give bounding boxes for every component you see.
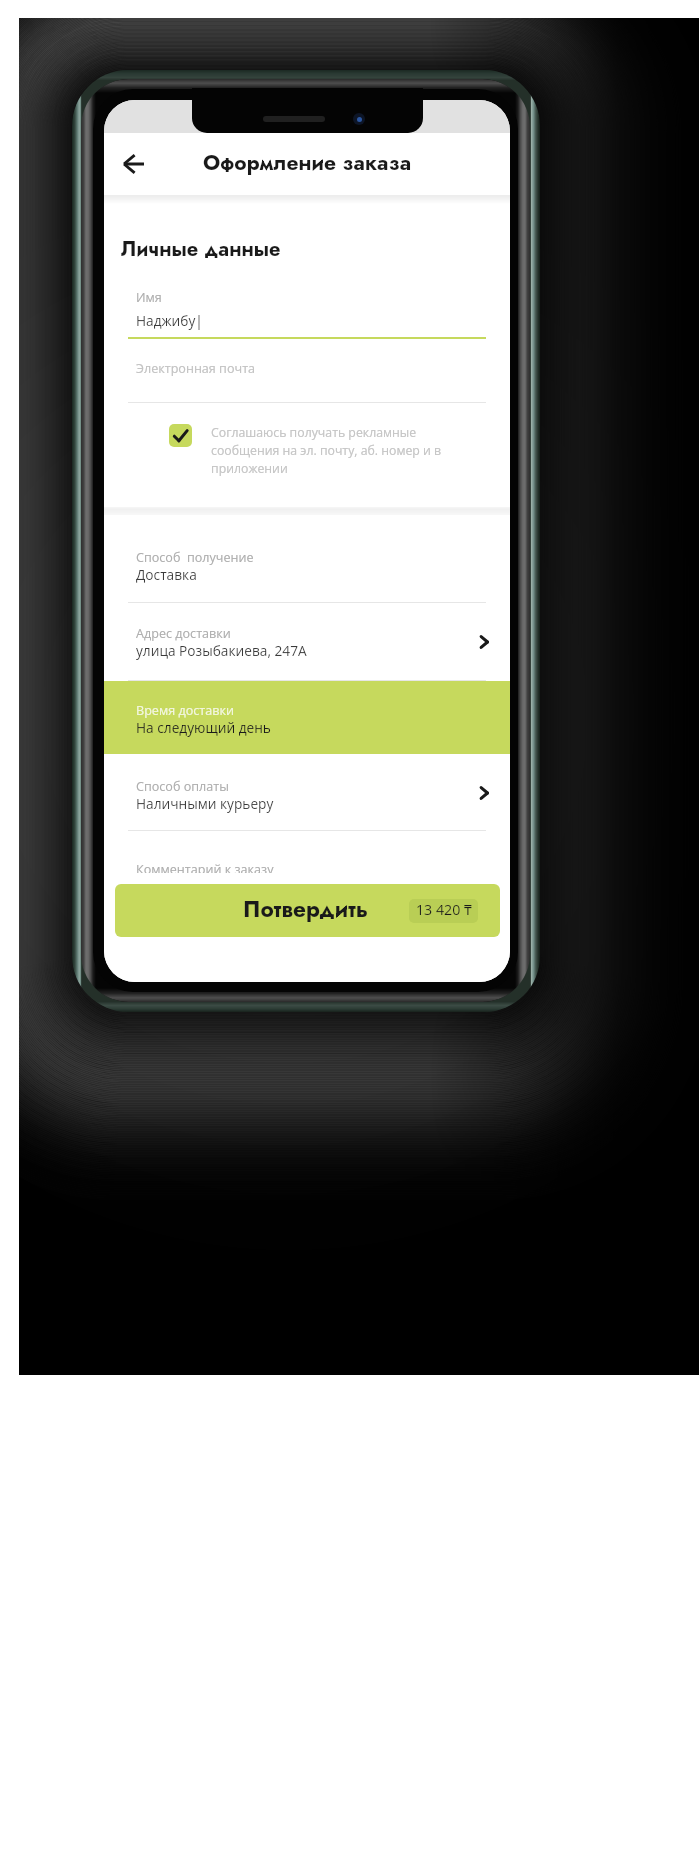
button[interactable]: Время доставки bbox=[104, 681, 510, 754]
staticText: Имя bbox=[136, 289, 162, 306]
button[interactable]: Способ оплаты bbox=[104, 754, 510, 831]
staticText: Оформление заказа bbox=[203, 148, 412, 178]
staticText: Электронная почта bbox=[136, 360, 256, 377]
button[interactable]: Agree to receive promotions bbox=[169, 424, 192, 447]
button[interactable]: Адрес доставки bbox=[104, 603, 510, 681]
staticText: улица Розыбакиева, 247А bbox=[136, 641, 307, 660]
button[interactable]: Потвердить bbox=[115, 884, 500, 937]
staticText: Комментарий к заказу bbox=[136, 861, 274, 878]
staticText: Соглашаюсь получать рекламные сообщения … bbox=[211, 424, 484, 477]
staticText: Потвердить bbox=[243, 893, 369, 926]
other: Open bbox=[476, 634, 492, 650]
button[interactable]: Способ получение bbox=[104, 515, 510, 603]
staticText: Личные данные bbox=[121, 235, 281, 264]
staticText: Способ оплаты bbox=[136, 778, 229, 795]
staticText: Наджибу| bbox=[136, 311, 203, 330]
staticText: 13 420 ₸ bbox=[416, 900, 472, 919]
button[interactable]: Back bbox=[113, 141, 159, 187]
staticText: Адрес доставки bbox=[136, 625, 231, 642]
staticText: Доставка bbox=[136, 565, 197, 584]
other: Open bbox=[476, 785, 492, 801]
staticText: Способ получение bbox=[136, 549, 254, 566]
staticText: Наличными курьеру bbox=[136, 794, 274, 813]
staticText: На следующий день bbox=[136, 718, 271, 737]
staticText: Время доставки bbox=[136, 702, 234, 719]
